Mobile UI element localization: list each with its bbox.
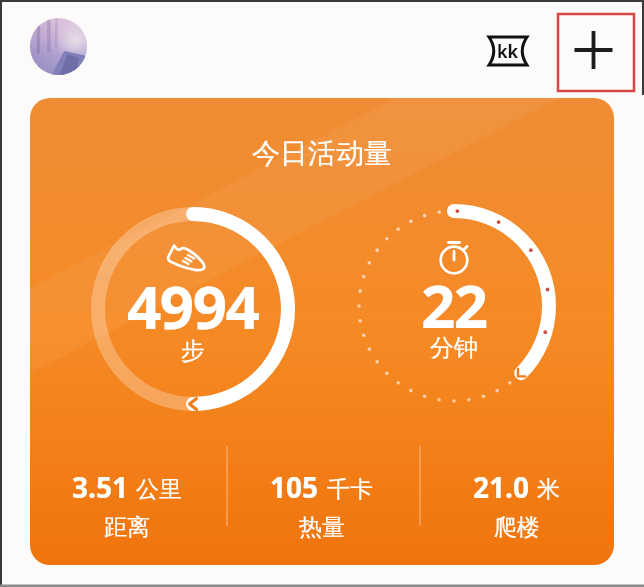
button[interactable] [558, 14, 634, 91]
staticText: 公里 [136, 475, 182, 504]
staticText: 米 [537, 475, 560, 504]
staticText: 距离 [104, 513, 150, 542]
staticText: 今日活动量 [252, 136, 392, 171]
button[interactable]: 21.0 [419, 468, 614, 565]
staticText: 22 [421, 264, 487, 346]
staticText: 3.51 [72, 468, 128, 506]
staticText: 爬楼 [494, 513, 540, 542]
staticText: 步 [181, 336, 205, 366]
staticText: 4994 [127, 265, 259, 347]
staticText: 热量 [299, 513, 345, 542]
staticText: 千卡 [327, 475, 373, 504]
button[interactable]: 3.51 [30, 468, 224, 565]
staticText: 21.0 [473, 468, 529, 506]
button[interactable]: 105 [224, 468, 419, 565]
staticText: 105 [270, 468, 319, 506]
staticText: 分钟 [430, 333, 478, 363]
button[interactable] [30, 18, 87, 75]
button[interactable]: 今日活动量 [30, 98, 614, 565]
button[interactable]: kk [483, 31, 533, 71]
staticText: kk [497, 40, 519, 63]
